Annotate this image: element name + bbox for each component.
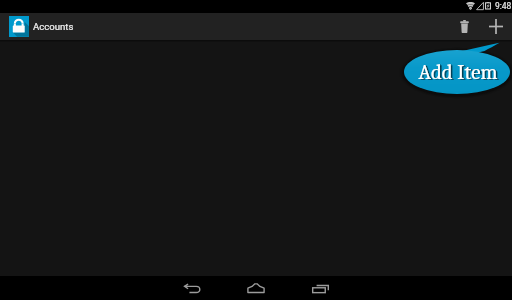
- staticText: Accounts: [33, 21, 74, 32]
- button[interactable]: Add: [480, 13, 512, 40]
- button[interactable]: Home: [224, 276, 288, 300]
- button[interactable]: Add Item: [396, 38, 512, 100]
- staticText: Add Item: [420, 61, 500, 85]
- staticText: 9:48: [495, 1, 512, 11]
- button[interactable]: Delete: [448, 13, 480, 40]
- staticText: Add Item: [418, 60, 498, 84]
- staticText: Add Item: [419, 60, 499, 84]
- button[interactable]: Back: [160, 276, 224, 300]
- button[interactable]: Recents: [288, 276, 352, 300]
